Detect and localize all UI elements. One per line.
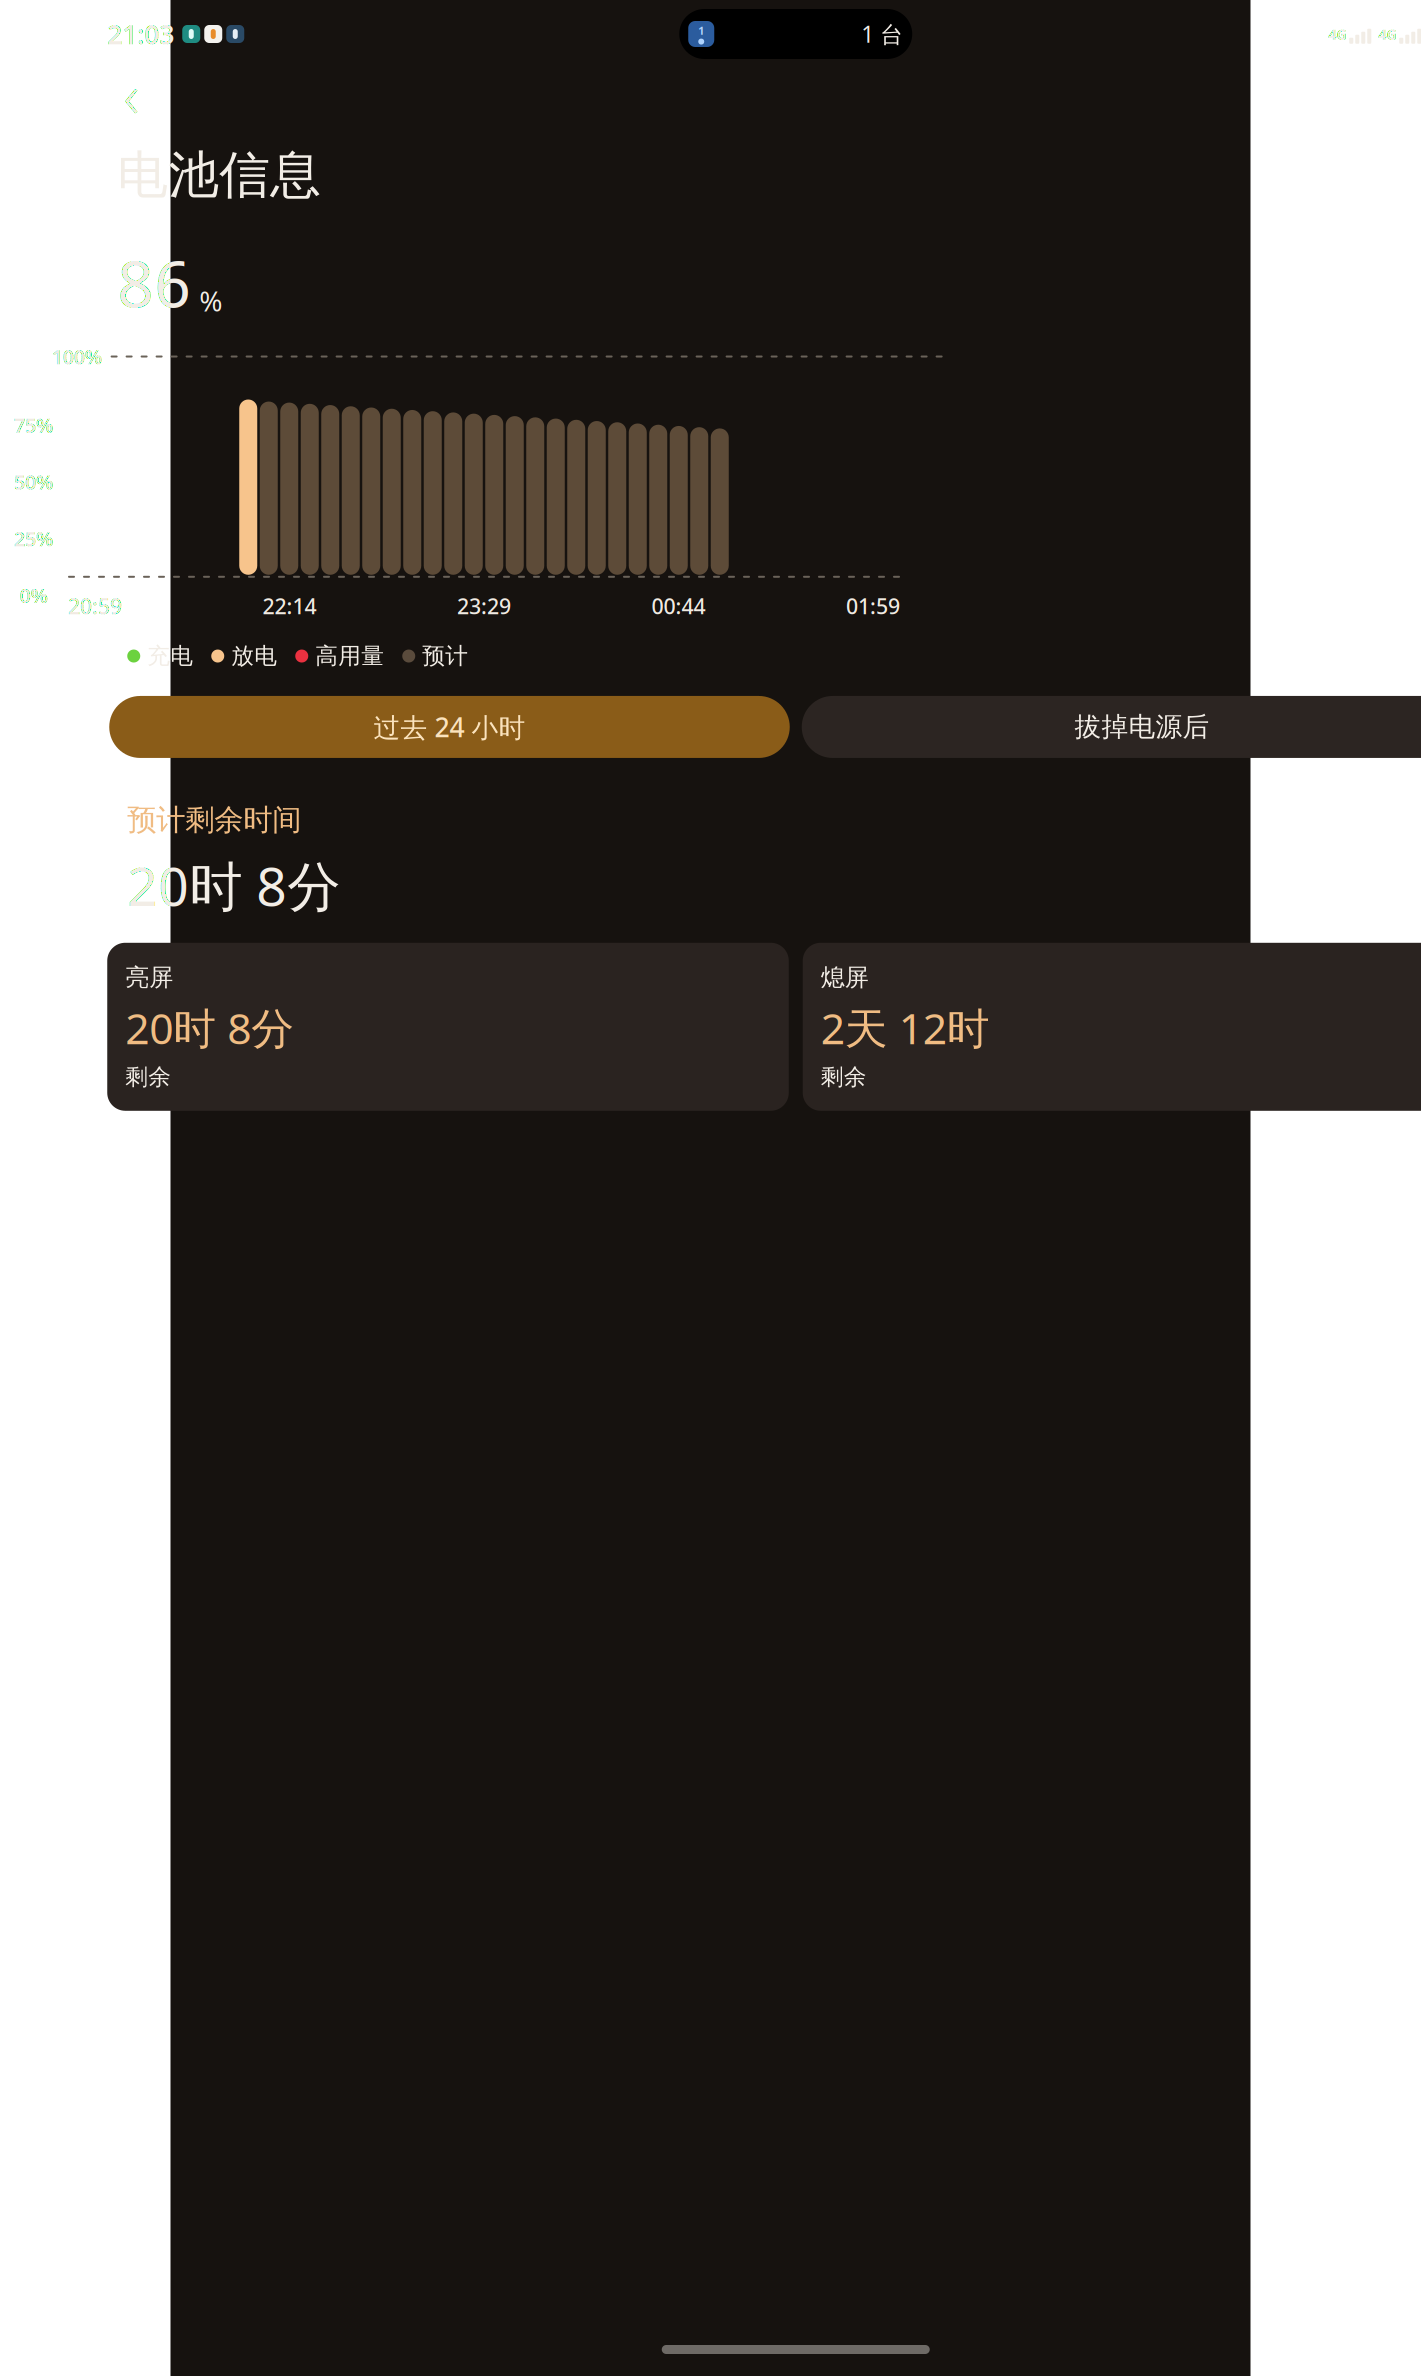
button[interactable]: 返回 bbox=[103, 66, 159, 122]
staticText: 23:29 bbox=[457, 592, 511, 620]
staticText: 高用量 bbox=[315, 642, 384, 670]
staticText: 20时 8分 bbox=[125, 999, 294, 1056]
staticText: 00:44 bbox=[651, 592, 705, 620]
staticText: 充电 bbox=[147, 642, 193, 670]
staticText: % bbox=[199, 282, 222, 319]
staticText: 86 bbox=[117, 240, 191, 325]
staticText: 22:14 bbox=[262, 592, 316, 620]
staticText: 1 bbox=[698, 23, 704, 38]
staticText: 剩余 bbox=[125, 1063, 171, 1091]
staticText: 21:03 bbox=[107, 16, 174, 52]
staticText: 剩余 bbox=[821, 1063, 867, 1091]
staticText: 电池信息 bbox=[117, 144, 321, 206]
staticText: 2天 12时 bbox=[821, 999, 990, 1056]
staticText: ‹ bbox=[123, 53, 139, 135]
staticText: 100% bbox=[52, 343, 103, 370]
staticText: 25% bbox=[14, 525, 54, 552]
staticText: 20时 8分 bbox=[127, 850, 340, 921]
staticText: 拔掉电源后 bbox=[1074, 711, 1209, 743]
button[interactable]: 拔掉电源后 bbox=[802, 696, 1421, 758]
staticText: 预计 bbox=[422, 642, 468, 670]
staticText: 预计剩余时间 bbox=[127, 802, 301, 838]
staticText: 过去 24 小时 bbox=[373, 709, 525, 745]
staticText: 4G bbox=[1378, 24, 1397, 44]
staticText: 熄屏 bbox=[821, 963, 869, 992]
staticText: 放电 bbox=[231, 642, 277, 670]
staticText: 亮屏 bbox=[125, 963, 173, 992]
staticText: 0% bbox=[19, 582, 48, 608]
staticText: 01:59 bbox=[846, 592, 900, 620]
staticText: 1 台 bbox=[861, 19, 903, 49]
staticText: 75% bbox=[14, 412, 54, 438]
button[interactable]: 过去 24 小时 bbox=[109, 696, 790, 758]
staticText: 50% bbox=[14, 468, 54, 495]
staticText: 20:59 bbox=[68, 592, 122, 620]
staticText: 4G bbox=[1328, 24, 1347, 44]
